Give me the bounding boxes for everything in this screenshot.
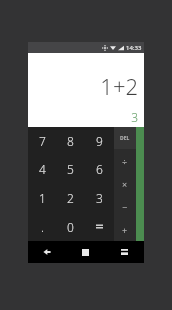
button[interactable]: Back [28,241,66,263]
button[interactable]: 6 [85,155,114,183]
button[interactable]: × [114,172,136,195]
staticText: 2 [67,190,74,206]
button[interactable]: DEL [114,127,136,149]
button[interactable]: 0 [56,212,85,241]
staticText: DEL [120,135,130,142]
button[interactable]: Recents [105,241,144,263]
staticText: 5 [67,161,74,177]
staticText: 1+2 [100,71,138,101]
staticText: − [122,201,128,213]
button[interactable]: 9 [85,127,114,155]
staticText: 9 [96,133,103,149]
staticText: 8 [67,133,74,149]
staticText: × [122,178,128,190]
button[interactable] [85,212,114,241]
button[interactable]: − [114,195,136,218]
button[interactable]: 5 [56,155,85,183]
staticText: 4 [39,161,46,177]
staticText: 14:33 [126,44,142,52]
staticText: 1 [39,190,46,206]
staticText: 7 [39,133,46,149]
button[interactable]: + [114,218,136,241]
staticText: 6 [96,161,103,177]
button[interactable]: 3 [85,183,114,212]
button[interactable]: 4 [28,155,56,183]
staticText: 3 [131,109,138,125]
staticText: . [41,219,44,235]
button[interactable]: 1 [28,183,56,212]
staticText: 3 [96,190,103,206]
button[interactable]: 8 [56,127,85,155]
button[interactable]: . [28,212,56,241]
button[interactable]: 2 [56,183,85,212]
staticText: + [122,224,128,236]
button[interactable]: Home [66,241,105,263]
button[interactable]: 7 [28,127,56,155]
staticText: 0 [67,219,74,235]
staticText: ÷ [122,155,128,167]
button[interactable]: ÷ [114,149,136,172]
